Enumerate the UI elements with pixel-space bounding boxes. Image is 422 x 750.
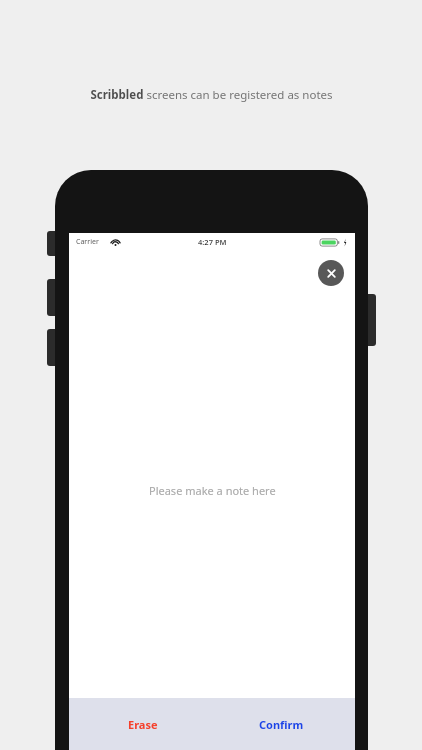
staticText: Confirm [259, 717, 304, 732]
staticText: Carrier [76, 237, 99, 247]
button[interactable]: Close [318, 260, 344, 286]
staticText: Scribbled screens can be registered as n… [90, 87, 333, 103]
button[interactable]: Confirm [225, 698, 337, 750]
staticText: Erase [128, 717, 158, 732]
button[interactable]: Erase [87, 698, 199, 750]
staticText: 4:27 PM [198, 237, 227, 247]
staticText: Please make a note here [149, 483, 276, 498]
